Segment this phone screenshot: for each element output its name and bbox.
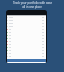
button[interactable] [7,55,46,58]
button[interactable] [7,52,46,55]
staticText: all in one place [22,5,42,9]
button[interactable] [7,34,46,37]
button[interactable] [7,19,46,22]
button[interactable] [7,31,46,34]
button[interactable] [7,49,46,52]
button[interactable] [7,40,46,43]
button[interactable] [7,22,46,25]
button[interactable] [7,28,46,31]
button[interactable] [7,37,46,40]
staticText: Track your portfolio with ease [13,1,52,5]
button[interactable] [7,16,46,19]
button[interactable] [7,46,46,49]
button[interactable] [7,43,46,46]
button[interactable] [7,25,46,28]
